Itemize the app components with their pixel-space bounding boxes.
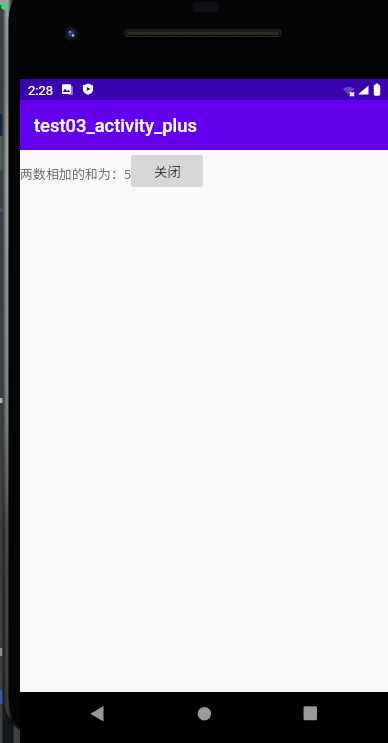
button[interactable]: Home — [178, 692, 230, 736]
button[interactable]: 关闭 — [131, 155, 203, 187]
staticText: 关闭 — [154, 161, 181, 181]
staticText: 2:28 — [28, 83, 54, 98]
button[interactable]: Recents — [278, 692, 330, 736]
staticText: 两数相加的和为：5 — [20, 164, 132, 183]
button[interactable]: Back — [82, 692, 134, 736]
staticText: test03_activity_plus — [34, 115, 197, 137]
